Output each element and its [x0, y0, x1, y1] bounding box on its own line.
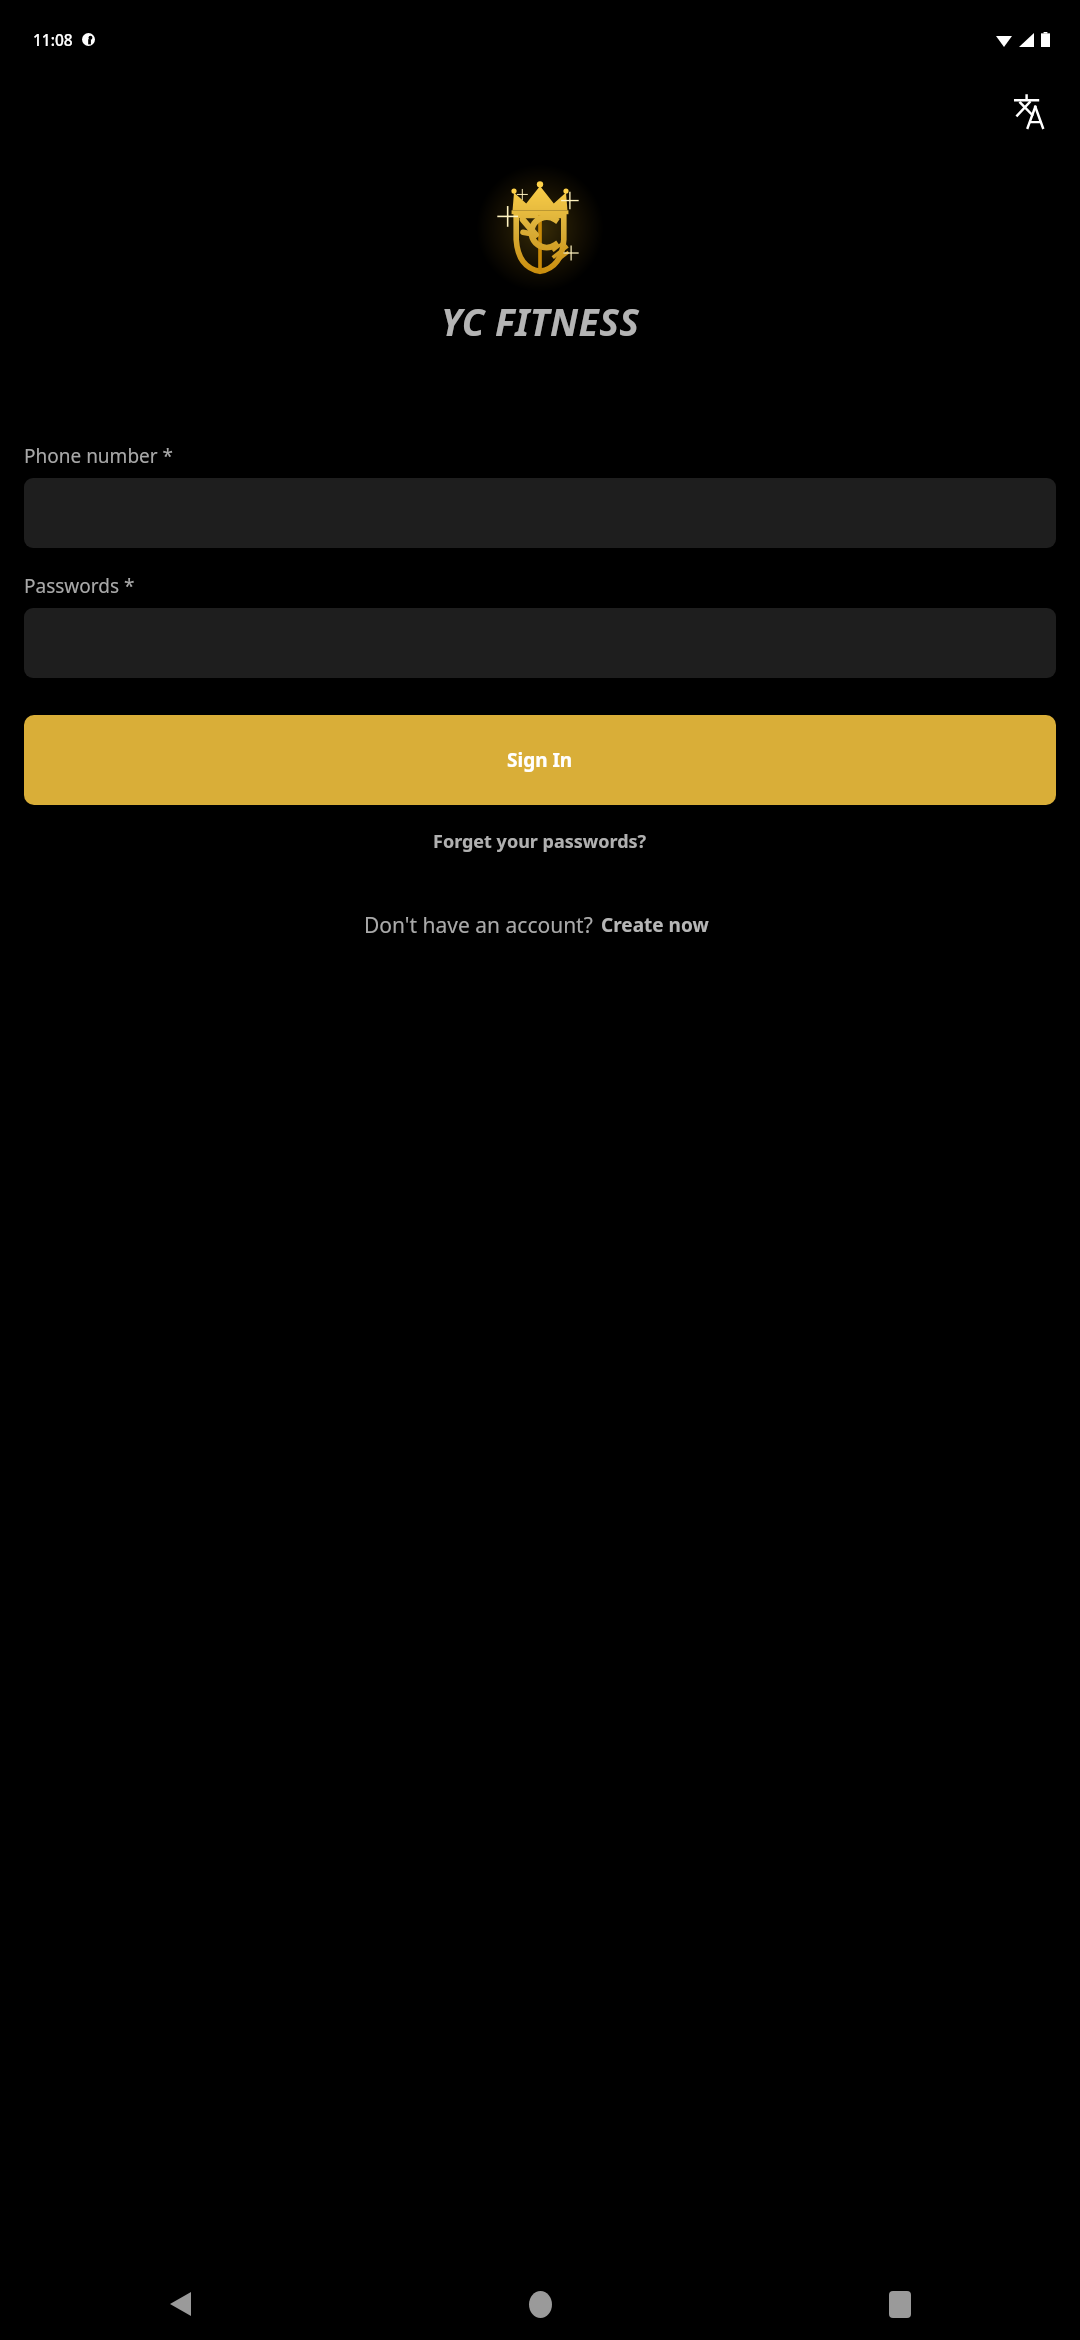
- button[interactable]: Create now: [593, 906, 717, 944]
- button[interactable]: Change language: [1002, 84, 1058, 140]
- button[interactable]: Recent apps: [720, 2268, 1080, 2340]
- staticText: Sign In: [507, 747, 573, 773]
- staticText: 11:08: [33, 29, 73, 50]
- button[interactable]: Back: [0, 2268, 360, 2340]
- staticText: Phone number *: [24, 443, 174, 469]
- staticText: Passwords *: [24, 573, 135, 599]
- button[interactable]: Home: [360, 2268, 720, 2340]
- button[interactable]: Sign In: [24, 715, 1056, 805]
- staticText: Forget your passwords?: [433, 829, 647, 854]
- button[interactable]: Forget your passwords?: [421, 819, 659, 864]
- staticText: Create now: [601, 912, 709, 938]
- staticText: Don't have an account?: [364, 911, 593, 940]
- staticText: YC FITNESS: [441, 296, 640, 346]
